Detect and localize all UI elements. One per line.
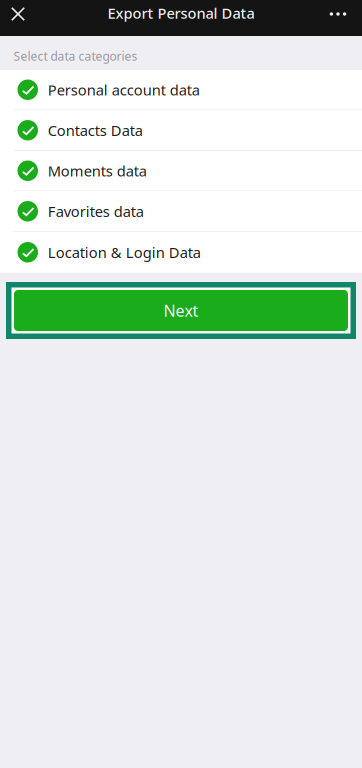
staticText: Personal account data <box>48 80 200 99</box>
staticText: Location & Login Data <box>48 242 201 262</box>
staticText: Moments data <box>48 161 147 180</box>
button[interactable]: Moments data <box>0 151 362 191</box>
staticText: Select data categories <box>13 48 137 64</box>
staticText: Contacts Data <box>48 120 143 140</box>
staticText: Export Personal Data <box>107 3 254 23</box>
staticText: Favorites data <box>48 201 144 221</box>
button[interactable]: Next <box>6 282 356 339</box>
button[interactable]: More options <box>314 0 362 28</box>
button[interactable]: Close <box>0 0 36 28</box>
button[interactable]: Location & Login Data <box>0 232 362 272</box>
button[interactable]: Favorites data <box>0 191 362 232</box>
button[interactable]: Contacts Data <box>0 110 362 151</box>
button[interactable]: Personal account data <box>0 70 362 110</box>
staticText: Next <box>163 300 198 321</box>
